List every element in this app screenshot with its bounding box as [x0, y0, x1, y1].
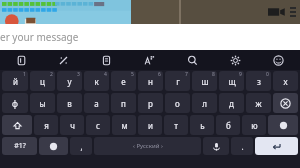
- staticText: er your message: [0, 30, 79, 44]
- button[interactable]: .: [231, 137, 253, 155]
- button[interactable]: Settings: [214, 50, 257, 70]
- staticText: р: [148, 98, 153, 109]
- button[interactable]: б: [216, 115, 240, 135]
- button[interactable]: е: [111, 71, 136, 91]
- button[interactable]: Stickers: [42, 50, 85, 70]
- staticText: г: [176, 76, 180, 87]
- button[interactable]: ц: [30, 71, 55, 91]
- staticText: 0: [266, 71, 269, 78]
- button[interactable]: ю: [242, 115, 266, 135]
- staticText: ю: [251, 120, 258, 131]
- button[interactable]: ы: [30, 93, 55, 113]
- staticText: 6: [158, 71, 161, 78]
- button[interactable]: и: [138, 115, 162, 135]
- staticText: м: [121, 120, 128, 131]
- staticText: в: [67, 98, 72, 109]
- button[interactable]: ,: [70, 137, 92, 155]
- button[interactable]: т: [164, 115, 188, 135]
- staticText: ж: [255, 98, 262, 109]
- button[interactable]: с: [86, 115, 110, 135]
- button[interactable]: er your message: [0, 24, 300, 50]
- staticText: д: [229, 98, 234, 109]
- staticText: 8: [212, 71, 215, 78]
- staticText: щ: [228, 76, 236, 87]
- staticText: а: [94, 98, 99, 109]
- button[interactable]: Clipboard history: [0, 50, 42, 70]
- button[interactable]: й: [2, 71, 28, 91]
- button[interactable]: ж: [246, 93, 271, 113]
- staticText: 2: [50, 71, 53, 78]
- staticText: и: [148, 120, 153, 131]
- staticText: ‹ Русский ›: [133, 142, 163, 150]
- staticText: 3: [77, 71, 80, 78]
- button[interactable]: о: [165, 93, 190, 113]
- button[interactable]: л: [192, 93, 217, 113]
- button[interactable]: Voice input: [203, 137, 229, 155]
- button[interactable]: Search: [171, 50, 214, 70]
- button[interactable]: More: [290, 6, 296, 18]
- staticText: ,: [80, 141, 83, 152]
- staticText: ы: [39, 98, 46, 109]
- staticText: к: [94, 76, 99, 87]
- staticText: .: [241, 141, 244, 152]
- staticText: 4: [104, 71, 107, 78]
- staticText: л: [202, 98, 207, 109]
- button[interactable]: к: [84, 71, 109, 91]
- button[interactable]: д: [219, 93, 244, 113]
- staticText: ш: [201, 76, 209, 87]
- button[interactable]: Emoji: [39, 137, 68, 155]
- button[interactable]: п: [111, 93, 136, 113]
- button[interactable]: а: [84, 93, 109, 113]
- button[interactable]: #1?: [2, 137, 37, 155]
- button[interactable]: р: [138, 93, 163, 113]
- button[interactable]: ч: [60, 115, 84, 135]
- button[interactable]: Delete: [268, 115, 298, 135]
- staticText: з: [257, 76, 261, 87]
- button[interactable]: Shift: [2, 115, 32, 135]
- button[interactable]: Enter: [255, 137, 298, 155]
- staticText: о: [175, 98, 180, 109]
- staticText: ц: [40, 76, 45, 87]
- staticText: й: [13, 76, 18, 87]
- button[interactable]: я: [34, 115, 58, 135]
- button[interactable]: ь: [190, 115, 214, 135]
- staticText: б: [226, 120, 231, 131]
- button[interactable]: Translate: [128, 50, 171, 70]
- button[interactable]: ш: [192, 71, 217, 91]
- staticText: н: [148, 76, 153, 87]
- staticText: ь: [200, 120, 205, 131]
- button[interactable]: у: [57, 71, 82, 91]
- staticText: 9: [239, 71, 242, 78]
- staticText: 1: [23, 71, 26, 78]
- button[interactable]: щ: [219, 71, 244, 91]
- button[interactable]: ф: [2, 93, 28, 113]
- button[interactable]: Backspace: [273, 93, 298, 113]
- staticText: п: [121, 98, 126, 109]
- staticText: х: [283, 76, 288, 87]
- staticText: #1?: [14, 141, 26, 151]
- staticText: с: [96, 120, 100, 131]
- staticText: 7: [185, 71, 188, 78]
- staticText: е: [121, 76, 126, 87]
- button[interactable]: в: [57, 93, 82, 113]
- staticText: у: [67, 76, 72, 87]
- staticText: т: [174, 120, 178, 131]
- button[interactable]: з: [246, 71, 271, 91]
- staticText: ч: [70, 120, 75, 131]
- staticText: я: [44, 120, 49, 131]
- staticText: 5: [131, 71, 134, 78]
- button[interactable]: Clipboard: [85, 50, 128, 70]
- button[interactable]: н: [138, 71, 163, 91]
- button[interactable]: Space: [94, 137, 201, 155]
- staticText: ф: [12, 98, 18, 109]
- button[interactable]: г: [165, 71, 190, 91]
- button[interactable]: м: [112, 115, 136, 135]
- button[interactable]: х: [273, 71, 298, 91]
- button[interactable]: Emoji: [257, 50, 300, 70]
- button[interactable]: Camera: [268, 6, 286, 18]
